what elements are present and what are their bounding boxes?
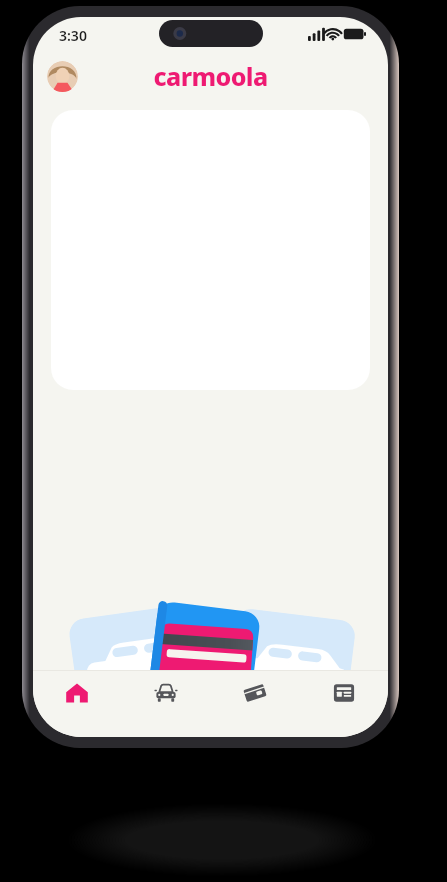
button[interactable]: Home: [33, 671, 121, 715]
button[interactable]: Payments: [210, 671, 299, 715]
staticText: 3:30: [59, 26, 87, 45]
staticText: carmoola: [153, 59, 268, 93]
button[interactable]: News: [299, 671, 388, 715]
button[interactable]: Profile: [47, 61, 78, 92]
button[interactable]: Car: [121, 671, 210, 715]
